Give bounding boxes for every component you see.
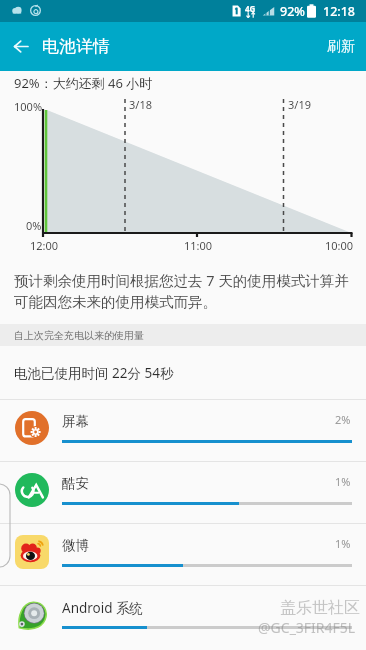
staticText: 1% xyxy=(335,474,351,489)
button[interactable]: 微博 xyxy=(0,524,366,585)
staticText: 4G xyxy=(245,3,256,14)
staticText: 3/19 xyxy=(288,97,311,112)
staticText: 盖乐世社区 xyxy=(280,598,360,618)
staticText: 3/18 xyxy=(129,97,152,112)
staticText: 刷新 xyxy=(327,38,355,56)
staticText: @GC_3FIR4F5L xyxy=(258,618,356,637)
staticText: 电池详情 xyxy=(42,36,110,57)
staticText: 11:00 xyxy=(184,238,213,253)
staticText: 92%：大约还剩 46 小时 xyxy=(14,74,153,92)
staticText: 屏幕 xyxy=(62,413,89,430)
staticText: 微博 xyxy=(62,537,89,554)
staticText: 酷安 xyxy=(62,475,89,492)
staticText: 92% xyxy=(280,3,305,20)
staticText: 12:00 xyxy=(30,238,59,253)
button[interactable]: 酷安 xyxy=(0,462,366,523)
staticText: 2% xyxy=(335,412,351,427)
staticText: 100% xyxy=(14,99,43,114)
staticText: 12:18 xyxy=(323,3,356,20)
staticText: 电池已使用时间 22分 54秒 xyxy=(14,364,174,382)
button[interactable]: Back xyxy=(0,22,42,71)
staticText: 自上次完全充电以来的使用量 xyxy=(14,329,144,342)
staticText: 0% xyxy=(26,218,42,233)
button[interactable]: Android 系统 xyxy=(0,586,366,647)
staticText: 1% xyxy=(335,536,351,551)
staticText: 预计剩余使用时间根据您过去 7 天的使用模式计算并可能因您未来的使用模式而异。 xyxy=(14,270,354,312)
staticText: 10:00 xyxy=(325,238,354,253)
button[interactable]: 刷新 xyxy=(316,22,366,71)
staticText: Android 系统 xyxy=(62,599,144,617)
button[interactable]: 屏幕 xyxy=(0,400,366,461)
